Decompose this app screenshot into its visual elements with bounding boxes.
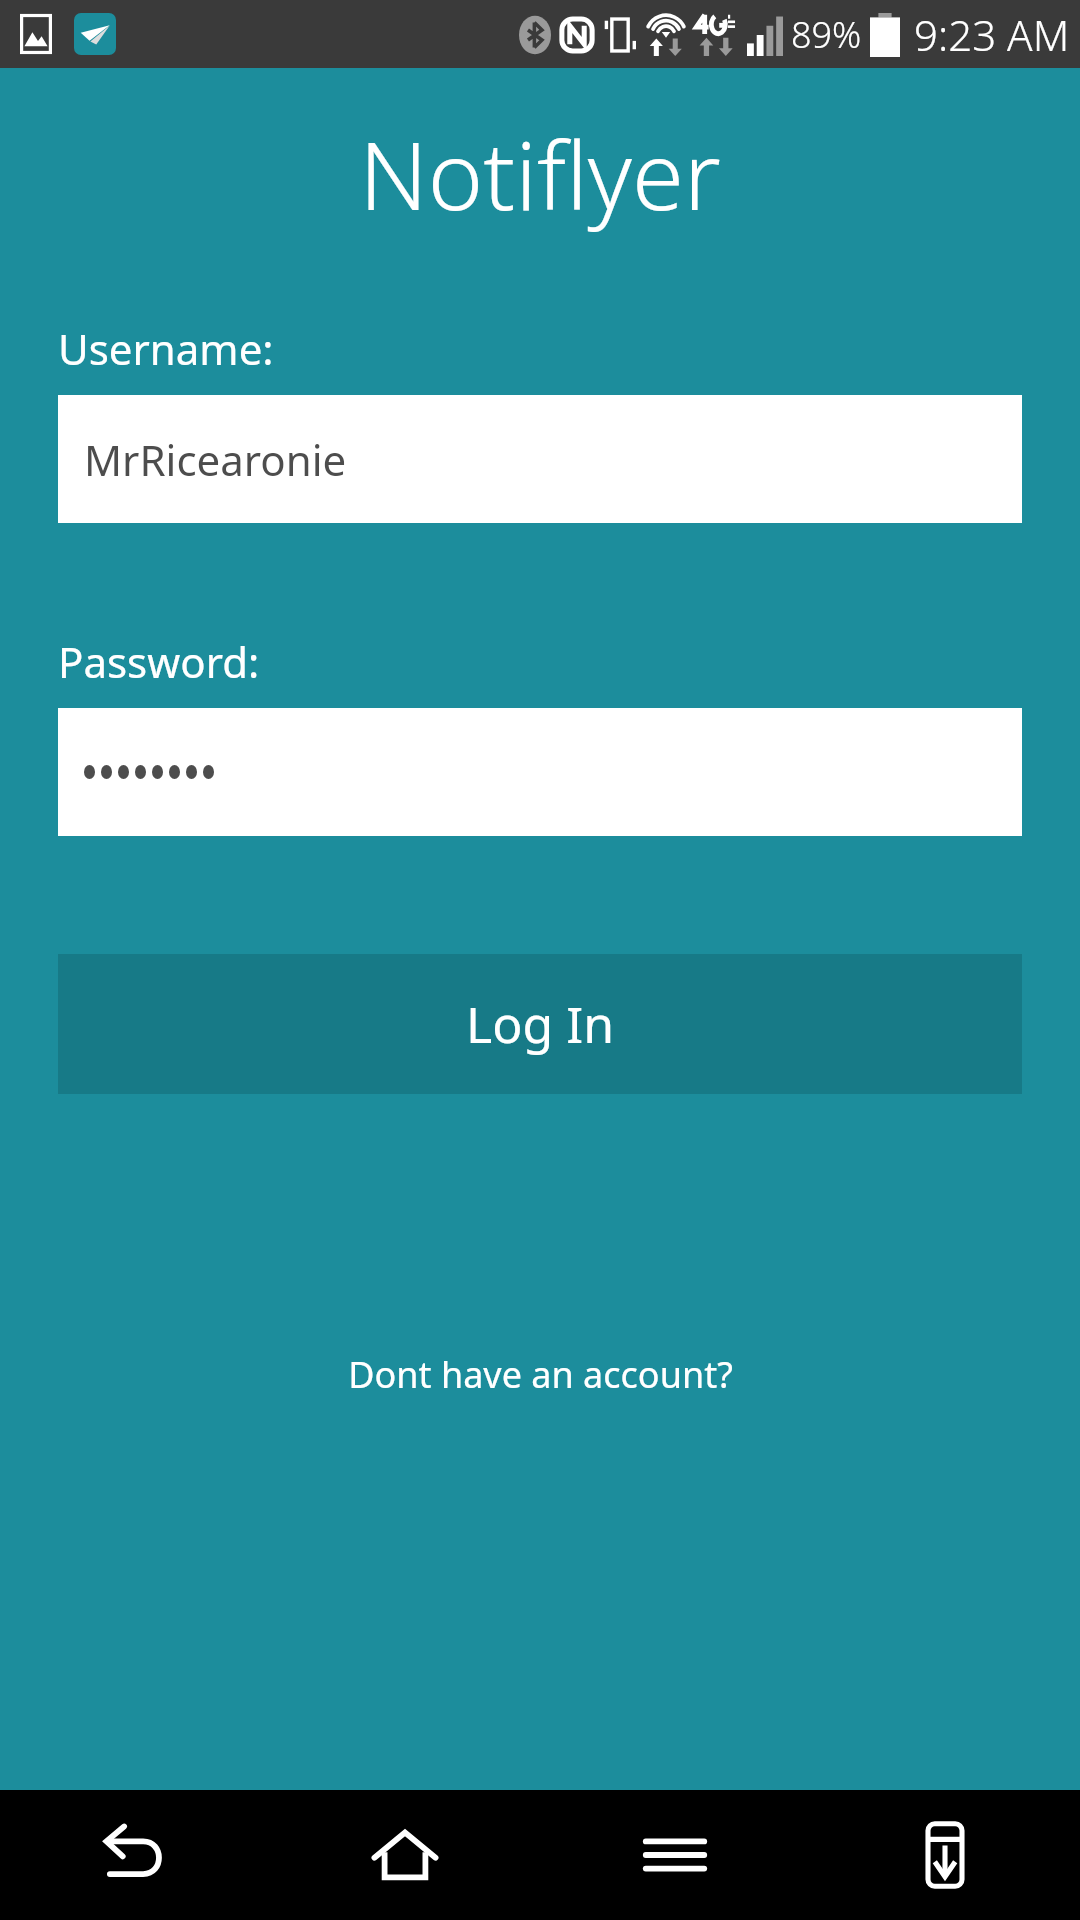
staticText: 9:23 AM <box>914 6 1070 63</box>
button[interactable]: MrRicearonie <box>58 395 1022 523</box>
staticText: Log In <box>466 990 615 1058</box>
staticText: Notiflyer <box>359 110 721 238</box>
staticText: 89% <box>791 10 862 59</box>
button[interactable]: Log In <box>58 954 1022 1094</box>
button[interactable]: Notifications <box>810 1790 1080 1920</box>
staticText: MrRicearonie <box>84 431 347 488</box>
button[interactable]: Dont have an account? <box>332 1340 749 1409</box>
staticText: Dont have an account? <box>348 1350 733 1399</box>
button[interactable]: Back <box>0 1790 270 1920</box>
button[interactable]: Recent apps <box>540 1790 810 1920</box>
button[interactable] <box>58 708 1022 836</box>
staticText: Username: <box>58 320 274 377</box>
button[interactable]: Home <box>270 1790 540 1920</box>
staticText: Password: <box>58 633 260 690</box>
